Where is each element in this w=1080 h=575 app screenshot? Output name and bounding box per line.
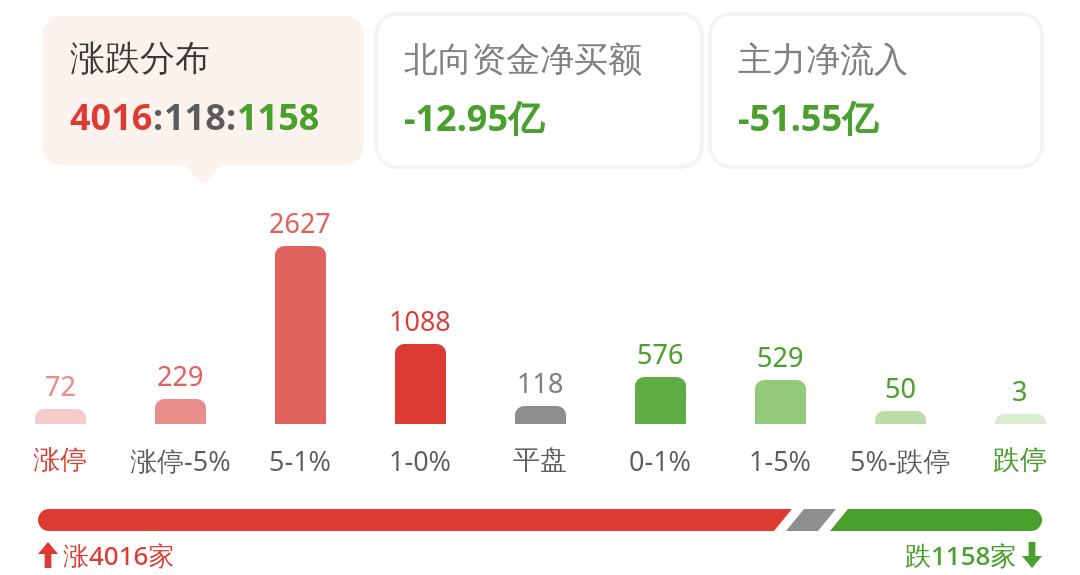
staticText: 229 xyxy=(157,357,204,394)
button[interactable]: 跌1158家 xyxy=(905,537,1042,573)
staticText: 涨停 xyxy=(33,443,87,477)
button[interactable]: 涨跌分布 xyxy=(42,16,364,165)
button[interactable]: 118 xyxy=(480,196,600,424)
staticText: 跌停 xyxy=(993,443,1047,477)
button[interactable]: 1-0% xyxy=(360,440,480,480)
staticText: 跌1158家 xyxy=(905,537,1017,573)
button[interactable]: 3 xyxy=(960,196,1080,424)
staticText: 0-1% xyxy=(629,442,692,479)
button[interactable]: 529 xyxy=(720,196,840,424)
staticText: 2627 xyxy=(269,204,331,241)
staticText: 4016 xyxy=(70,92,153,141)
staticText: : xyxy=(226,92,237,141)
staticText: 529 xyxy=(757,338,804,375)
staticText: 主力净流入 xyxy=(738,38,908,81)
staticText: 涨跌分布 xyxy=(70,36,210,80)
staticText: 118 xyxy=(164,92,226,141)
staticText: 1-5% xyxy=(749,442,812,479)
button[interactable]: 5-1% xyxy=(240,440,360,480)
button[interactable]: 主力净流入 xyxy=(712,16,1040,165)
button[interactable]: 229 xyxy=(120,196,240,424)
staticText: -12.95亿 xyxy=(404,93,545,142)
staticText: 50 xyxy=(885,369,916,406)
staticText: 576 xyxy=(637,335,684,372)
staticText: 北向资金净买额 xyxy=(404,38,642,81)
staticText: 5-1% xyxy=(269,442,332,479)
button[interactable]: 0-1% xyxy=(600,440,720,480)
button[interactable]: 5%-跌停 xyxy=(840,440,960,480)
button[interactable]: 2627 xyxy=(240,196,360,424)
button[interactable]: 北向资金净买额 xyxy=(378,16,700,165)
staticText: 1-0% xyxy=(389,442,452,479)
staticText: 涨停-5% xyxy=(130,442,231,479)
staticText: 5%-跌停 xyxy=(850,442,951,479)
staticText: 1158 xyxy=(237,92,320,141)
staticText: 118 xyxy=(517,364,564,401)
staticText: : xyxy=(153,92,164,141)
button[interactable]: 涨停 xyxy=(0,440,120,480)
button[interactable]: 1088 xyxy=(360,196,480,424)
staticText: 平盘 xyxy=(513,443,567,477)
staticText: 72 xyxy=(45,367,76,404)
staticText: -51.55亿 xyxy=(738,93,879,142)
button[interactable]: 72 xyxy=(0,196,120,424)
staticText: 3 xyxy=(1012,372,1028,409)
button[interactable]: 1-5% xyxy=(720,440,840,480)
button[interactable]: 576 xyxy=(600,196,720,424)
button[interactable]: 涨4016家 xyxy=(38,537,175,573)
button[interactable]: 跌停 xyxy=(960,440,1080,480)
button[interactable]: 涨停-5% xyxy=(120,440,240,480)
button[interactable]: 平盘 xyxy=(480,440,600,480)
staticText: 1088 xyxy=(389,302,451,339)
button[interactable]: 50 xyxy=(840,196,960,424)
staticText: 涨4016家 xyxy=(63,537,175,573)
